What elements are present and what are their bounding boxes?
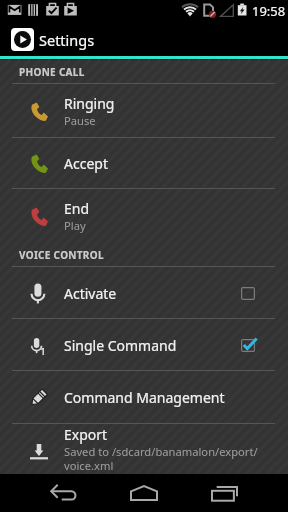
button[interactable]: Checked	[233, 330, 263, 360]
staticText: Saved to /sdcard/banamalon/export/ voice…	[64, 444, 258, 474]
staticText: PHONE CALL	[19, 65, 85, 79]
staticText: Play	[64, 218, 86, 233]
button[interactable]: End	[0, 189, 288, 243]
staticText: Settings	[39, 30, 95, 50]
button[interactable]: Activate	[0, 267, 288, 319]
staticText: Command Management	[64, 388, 225, 407]
staticText: End	[64, 199, 90, 218]
button[interactable]: Unchecked	[233, 278, 263, 308]
staticText: Single Command	[64, 336, 177, 355]
button[interactable]: Home	[104, 474, 184, 512]
button[interactable]: Export	[0, 424, 288, 474]
staticText: Pause	[64, 113, 96, 128]
button[interactable]: Accept	[0, 138, 288, 189]
staticText: VOICE CONTROL	[19, 248, 104, 262]
staticText: Activate	[64, 284, 117, 303]
button[interactable]: Single Command	[0, 319, 288, 371]
button[interactable]: Back	[24, 474, 104, 512]
staticText: Ringing	[64, 94, 115, 113]
button[interactable]: Recents	[184, 474, 264, 512]
staticText: 19:58	[252, 2, 286, 20]
button[interactable]: Ringing	[0, 84, 288, 138]
staticText: Export	[64, 425, 108, 444]
staticText: Accept	[64, 154, 108, 173]
button[interactable]: Command Management	[0, 371, 288, 424]
